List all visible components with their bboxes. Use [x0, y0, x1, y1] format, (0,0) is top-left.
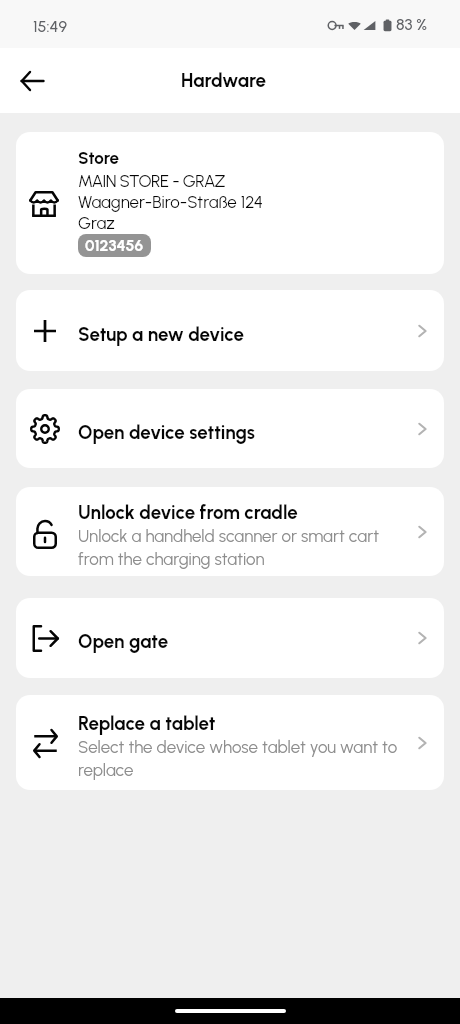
staticText: Select the device whose tablet you want … [78, 735, 408, 781]
staticText: Open device settings [78, 418, 255, 444]
button[interactable]: Open device settings [16, 389, 444, 468]
button[interactable]: Replace a tablet [16, 695, 444, 790]
other: Home [0, 998, 460, 1024]
staticText: Store [78, 141, 120, 170]
button[interactable]: Setup a new device [16, 290, 444, 371]
staticText: Setup a new device [78, 320, 244, 346]
staticText: Graz [78, 212, 115, 233]
button[interactable]: Open gate [16, 598, 444, 678]
staticText: Unlock a handheld scanner or smart cart … [78, 524, 408, 570]
button[interactable]: Store [16, 132, 444, 274]
staticText: 83 % [396, 15, 428, 34]
button[interactable]: Unlock device from cradle [16, 487, 444, 576]
staticText: Open gate [78, 627, 169, 653]
staticText: 0123456 [85, 236, 144, 255]
button[interactable]: Back [9, 58, 55, 104]
staticText: Hardware [181, 69, 267, 92]
staticText: MAIN STORE - GRAZ [78, 170, 225, 191]
staticText: 15:49 [33, 17, 67, 36]
staticText: Replace a tablet [78, 709, 216, 735]
staticText: Waagner-Biro-Straße 124 [78, 191, 264, 212]
staticText: Unlock device from cradle [78, 498, 298, 524]
